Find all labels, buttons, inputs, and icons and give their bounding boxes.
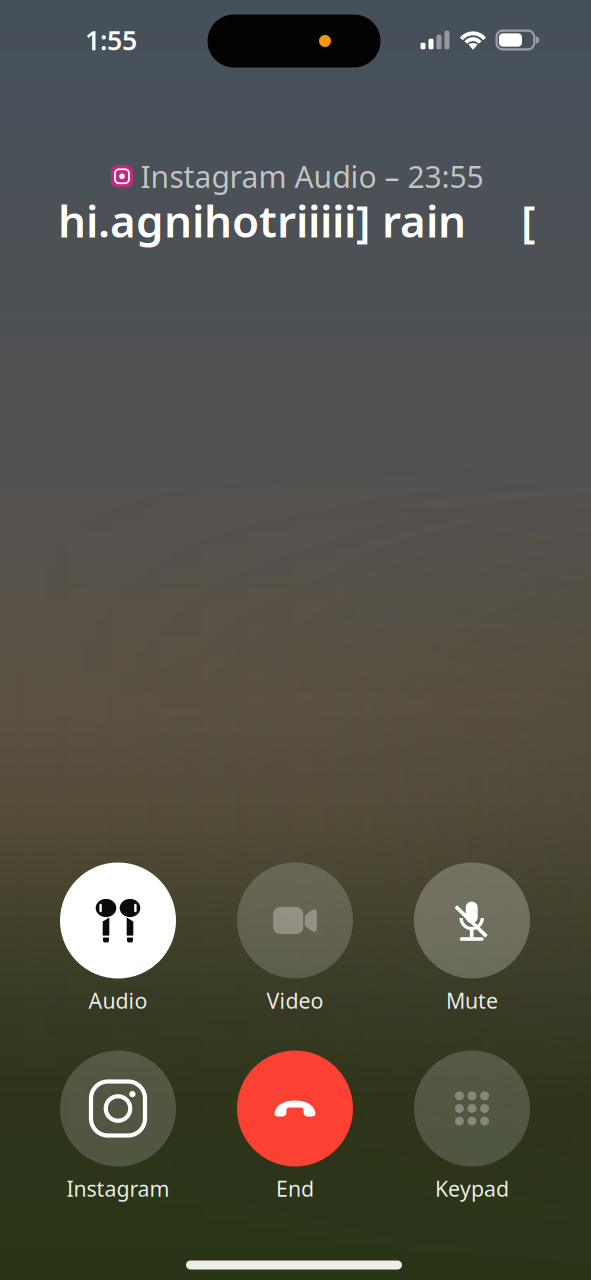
staticText: 1:55 [85, 22, 137, 58]
button[interactable]: Video [206, 862, 383, 1013]
staticText: Instagram Audio – 23:55 [140, 156, 483, 196]
button[interactable]: Instagram [29, 1050, 206, 1201]
staticText: Audio [88, 986, 147, 1015]
staticText: Keypad [435, 1174, 509, 1203]
button[interactable]: Audio [29, 862, 206, 1013]
staticText: Mute [446, 986, 498, 1015]
staticText: Video [266, 986, 323, 1015]
button[interactable]: Mute [383, 862, 560, 1013]
staticText: End [276, 1174, 314, 1203]
staticText: hi.agnihotriiiii] rain [ [58, 191, 536, 250]
button[interactable]: Keypad [383, 1050, 560, 1201]
staticText: Instagram [66, 1174, 169, 1203]
button[interactable]: End [206, 1050, 383, 1201]
